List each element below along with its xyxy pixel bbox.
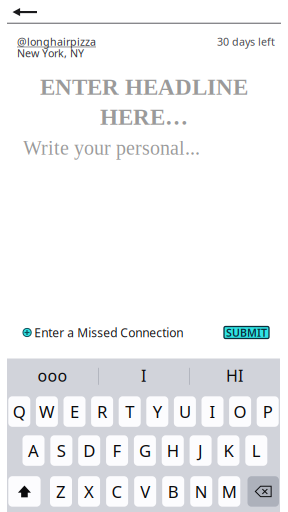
button[interactable]: ooo	[7, 362, 98, 388]
staticText: V	[140, 480, 150, 503]
staticText: T	[125, 400, 134, 423]
button[interactable]: F	[106, 435, 128, 466]
button[interactable]: G	[134, 435, 156, 466]
staticText: U	[179, 400, 191, 423]
button[interactable]: T	[119, 396, 141, 427]
button[interactable]: Shift	[8, 476, 41, 507]
button[interactable]: B	[162, 476, 184, 507]
staticText: 30 days left	[217, 34, 275, 49]
button[interactable]: V	[134, 476, 156, 507]
button[interactable]: Enter a Missed Connection	[23, 326, 183, 339]
staticText: ENTER HEADLINE	[40, 74, 248, 100]
button[interactable]: S	[50, 435, 72, 466]
staticText: HI	[226, 365, 243, 386]
staticText: A	[28, 439, 39, 462]
staticText: B	[168, 480, 179, 503]
button[interactable]: I	[201, 396, 223, 427]
staticText: SUBMIT	[226, 325, 267, 340]
staticText: X	[84, 480, 94, 503]
button[interactable]: W	[36, 396, 58, 427]
button[interactable]: Y	[146, 396, 168, 427]
staticText: New York, NY	[17, 46, 84, 60]
staticText: ooo	[37, 365, 67, 386]
staticText: Enter a Missed Connection	[34, 324, 183, 340]
button[interactable]: Back	[9, 5, 40, 19]
staticText: L	[252, 439, 261, 462]
staticText: K	[223, 439, 233, 462]
staticText: P	[263, 400, 273, 423]
staticText: C	[112, 480, 123, 503]
staticText: R	[97, 400, 107, 423]
button[interactable]: J	[190, 435, 212, 466]
staticText: Z	[56, 480, 66, 503]
button[interactable]: D	[78, 435, 100, 466]
staticText: I	[141, 365, 146, 386]
staticText: S	[57, 439, 66, 462]
staticText: HERE…	[100, 104, 188, 130]
button[interactable]: K	[217, 435, 239, 466]
button[interactable]: Q	[8, 396, 30, 427]
staticText: W	[39, 400, 55, 423]
staticText: G	[139, 439, 151, 462]
staticText: I	[209, 400, 215, 423]
button[interactable]: M	[218, 476, 240, 507]
staticText: J	[198, 439, 203, 462]
staticText: H	[167, 439, 179, 462]
staticText: D	[83, 439, 95, 462]
staticText: F	[113, 439, 122, 462]
button[interactable]: N	[190, 476, 212, 507]
button[interactable]: Delete	[247, 476, 279, 507]
staticText: Write your personal...	[23, 137, 200, 159]
button[interactable]: Z	[50, 476, 72, 507]
button[interactable]: H	[162, 435, 184, 466]
staticText: O	[234, 400, 247, 423]
staticText: M	[222, 480, 237, 503]
button[interactable]: HI	[189, 362, 280, 388]
button[interactable]: SUBMIT	[224, 326, 269, 338]
button[interactable]: A	[22, 435, 44, 466]
staticText: @longhairpizza	[17, 34, 96, 49]
staticText: N	[195, 480, 208, 503]
staticText: Y	[153, 400, 162, 423]
staticText: E	[70, 400, 79, 423]
button[interactable]: L	[245, 435, 267, 466]
button[interactable]: X	[78, 476, 100, 507]
button[interactable]: E	[63, 396, 85, 427]
button[interactable]: O	[229, 396, 251, 427]
button[interactable]: C	[106, 476, 128, 507]
button[interactable]: R	[91, 396, 113, 427]
button[interactable]: I	[98, 362, 189, 388]
button[interactable]: U	[174, 396, 196, 427]
button[interactable]: P	[257, 396, 279, 427]
staticText: Q	[13, 400, 26, 423]
